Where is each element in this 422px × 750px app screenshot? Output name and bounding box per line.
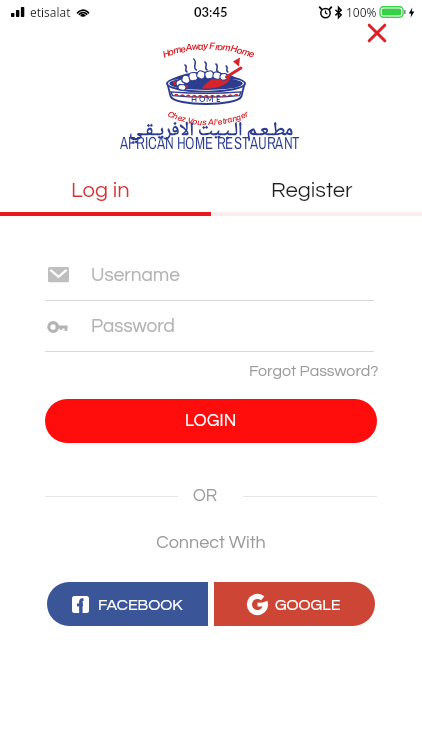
staticText: etisalat [30, 4, 71, 20]
button[interactable]: Password [48, 313, 377, 352]
staticText: Log in [71, 179, 130, 202]
staticText: Username [91, 265, 180, 285]
button[interactable]: LOGIN [45, 399, 377, 443]
button[interactable]: GOOGLE [214, 582, 375, 626]
staticText: OR [193, 487, 218, 505]
button[interactable]: Username [48, 262, 377, 301]
staticText: 100% [346, 4, 377, 20]
staticText: Register [271, 179, 353, 202]
button[interactable]: FACEBOOK [47, 582, 208, 626]
staticText: Password [91, 316, 175, 336]
staticText: LOGIN [185, 412, 237, 430]
button[interactable]: Forgot Password? [249, 363, 379, 379]
staticText: Connect With [0, 533, 422, 552]
button[interactable]: Close [366, 22, 388, 44]
button[interactable]: Register [211, 168, 422, 212]
button[interactable]: Log in [0, 168, 211, 212]
staticText: Forgot Password? [249, 363, 379, 379]
staticText: FACEBOOK [98, 597, 183, 613]
staticText: مطـعـم الـبـيت الافريـقـي [129, 115, 294, 147]
staticText: 03:45 [194, 4, 228, 20]
staticText: GOOGLE [275, 597, 341, 613]
